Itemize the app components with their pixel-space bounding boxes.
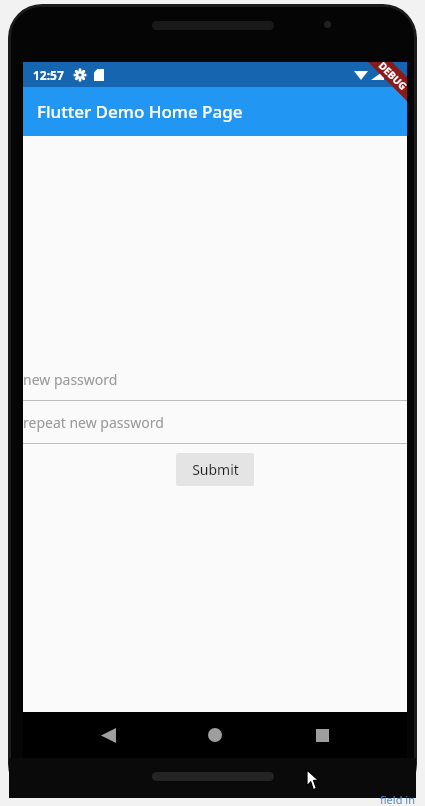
staticText: Flutter Demo Home Page (37, 100, 243, 123)
staticText: Submit (192, 460, 239, 479)
staticText: new password (23, 370, 118, 389)
button[interactable]: Submit (176, 453, 254, 486)
button[interactable]: new password (23, 358, 407, 400)
staticText: DEBUG (376, 62, 407, 93)
staticText: 12:57 (33, 67, 64, 83)
button[interactable]: Home (193, 713, 237, 757)
staticText: repeat new password (23, 413, 164, 432)
button[interactable]: Back (86, 713, 130, 757)
button[interactable]: repeat new password (23, 401, 407, 443)
staticText: field in (380, 792, 415, 806)
button[interactable]: Recent apps (300, 713, 344, 757)
